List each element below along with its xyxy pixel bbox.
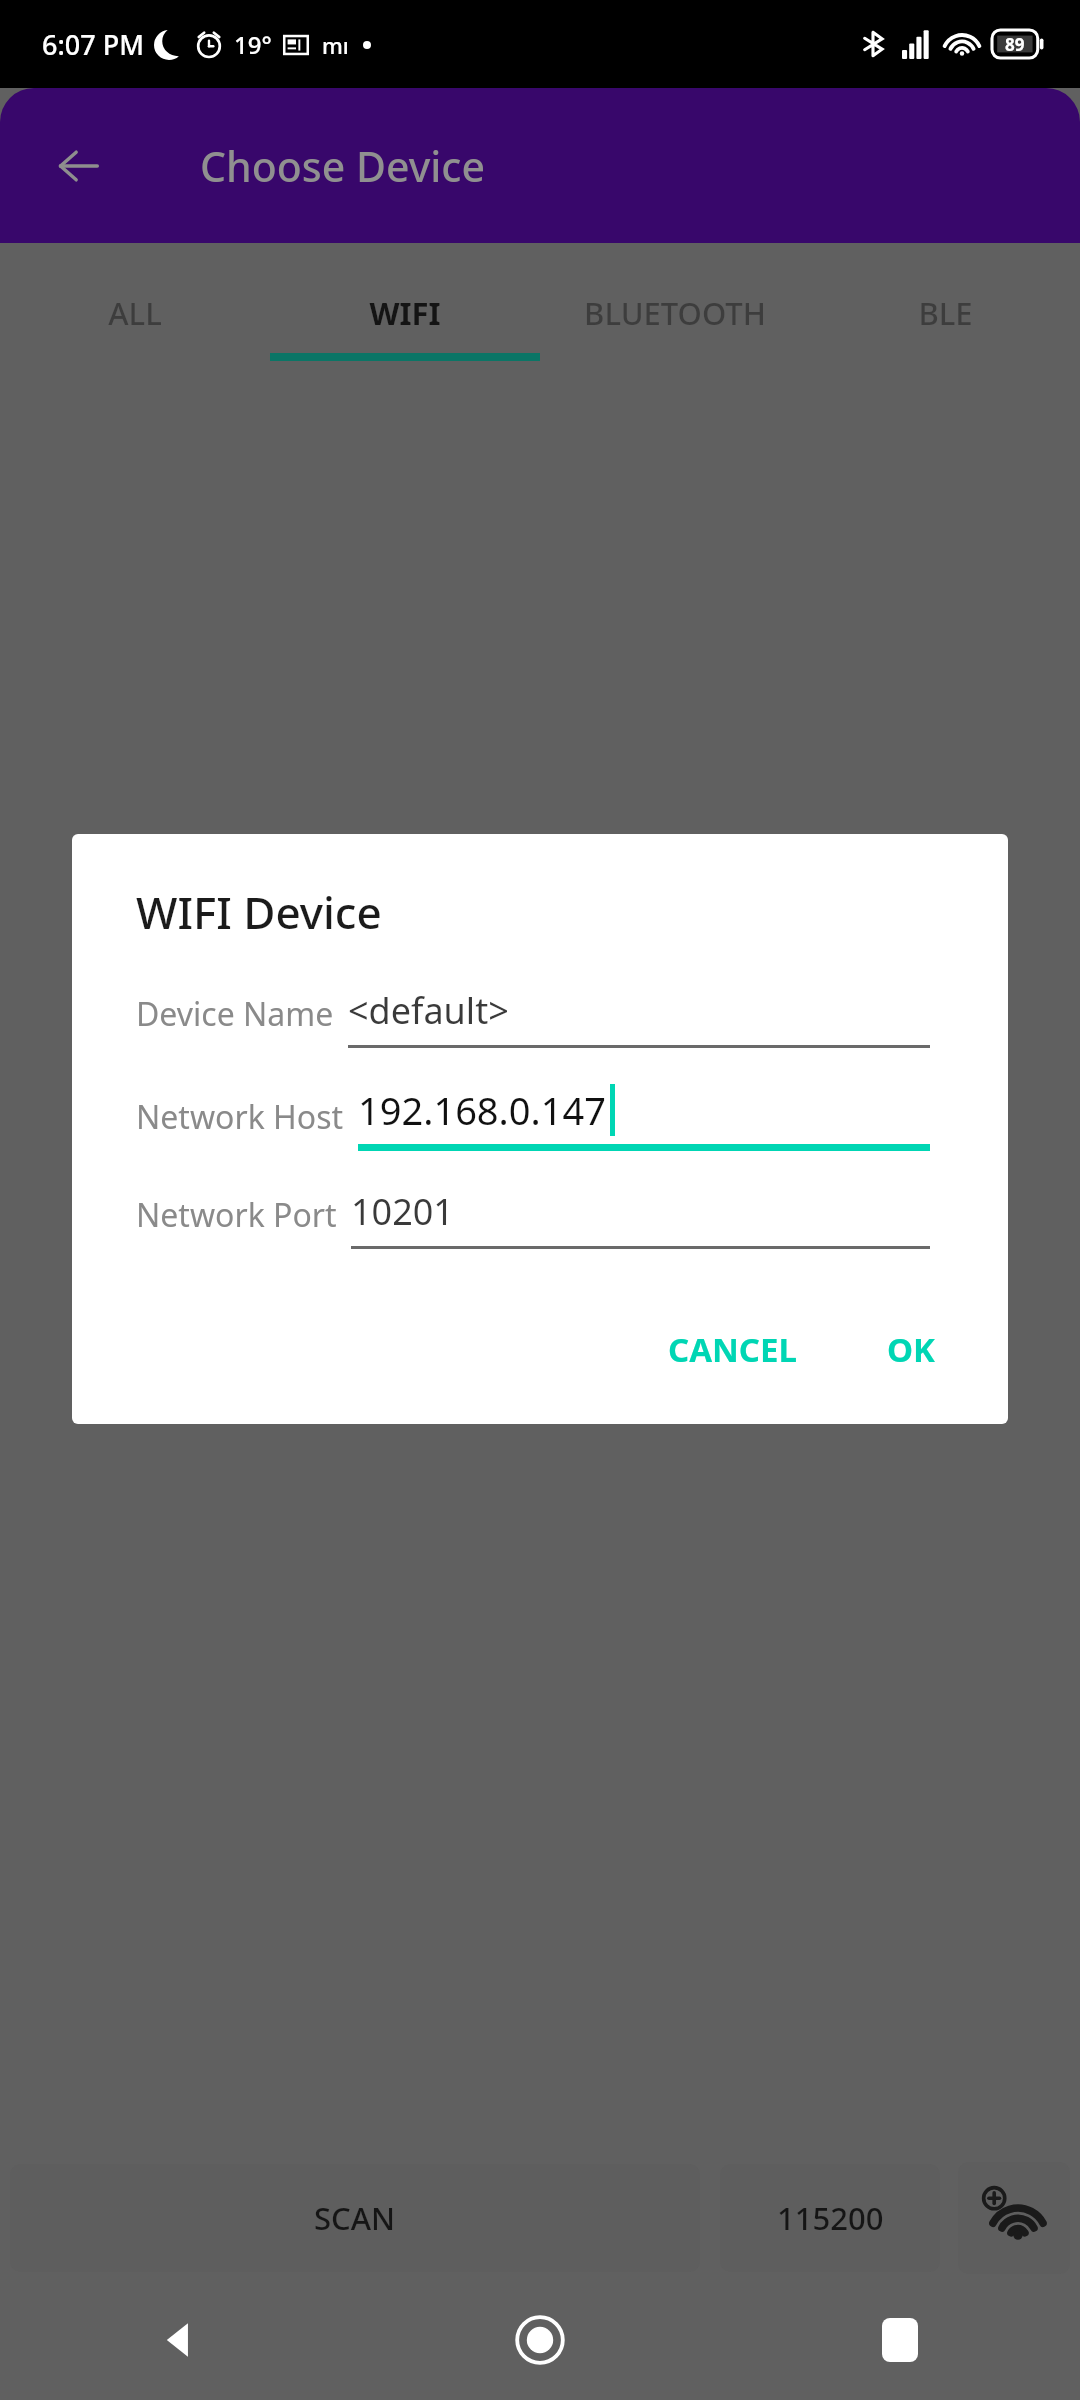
staticText: mı	[322, 30, 349, 60]
staticText: SCAN	[314, 2197, 396, 2239]
staticText: BLUETOOTH	[584, 292, 766, 334]
button[interactable]: Add WiFi device	[958, 2162, 1070, 2274]
staticText: WIFI	[369, 292, 441, 334]
staticText: BLE	[918, 292, 973, 334]
button[interactable]: BLE	[810, 243, 1080, 383]
staticText: 89	[1005, 33, 1025, 56]
button[interactable]: Back	[36, 124, 120, 208]
staticText: 192.168.0.147	[358, 1084, 606, 1136]
button[interactable]: OK	[861, 1309, 962, 1390]
staticText: Network Port	[136, 1193, 337, 1237]
button[interactable]: Back	[0, 2280, 360, 2400]
staticText: 6:07 PM	[42, 26, 144, 63]
staticText: Network Host	[136, 1095, 344, 1139]
staticText: ALL	[108, 292, 162, 334]
button[interactable]: Home	[360, 2280, 720, 2400]
button[interactable]: WIFI	[270, 243, 540, 383]
staticText: 115200	[777, 2197, 884, 2239]
button[interactable]: CANCEL	[642, 1309, 823, 1390]
button[interactable]: ALL	[0, 243, 270, 383]
button[interactable]: BLUETOOTH	[540, 243, 810, 383]
staticText: OK	[887, 1327, 936, 1372]
button[interactable]: Recent apps	[720, 2280, 1080, 2400]
button[interactable]: 115200	[720, 2164, 940, 2272]
staticText: Choose Device	[200, 138, 485, 194]
staticText: 19°	[234, 28, 272, 61]
button[interactable]: SCAN	[10, 2164, 700, 2272]
staticText: Device Name	[136, 992, 334, 1036]
staticText: CANCEL	[668, 1327, 797, 1372]
staticText: <default>	[348, 986, 509, 1035]
staticText: 10201	[351, 1187, 454, 1236]
staticText: WIFI Device	[136, 882, 382, 942]
